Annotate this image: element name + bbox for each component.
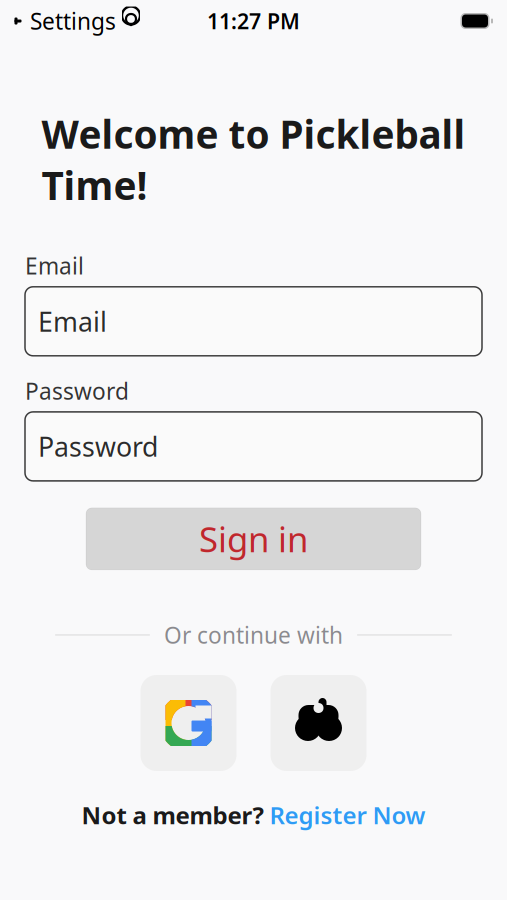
staticText: Sign in xyxy=(199,516,308,562)
button[interactable]: Not a member? xyxy=(71,793,435,837)
staticText: Settings xyxy=(30,6,116,36)
staticText: Email xyxy=(38,304,107,339)
staticText: Welcome to Pickleball Time! xyxy=(41,108,465,211)
staticText: 11:27 PM xyxy=(207,7,300,35)
button[interactable]: Continue with Google xyxy=(140,675,236,771)
button[interactable]: Email xyxy=(25,287,482,356)
button[interactable]: Password xyxy=(25,412,482,481)
staticText: Email xyxy=(25,251,84,281)
staticText: Not a member? xyxy=(81,799,263,831)
staticText: Register Now xyxy=(269,799,425,831)
staticText: Password xyxy=(25,376,129,406)
button[interactable]: Continue with Apple xyxy=(270,675,366,771)
button[interactable]: Settings xyxy=(14,2,141,40)
staticText: Or continue with xyxy=(164,620,343,650)
button[interactable]: Sign in xyxy=(86,508,421,570)
staticText: Password xyxy=(38,429,158,464)
